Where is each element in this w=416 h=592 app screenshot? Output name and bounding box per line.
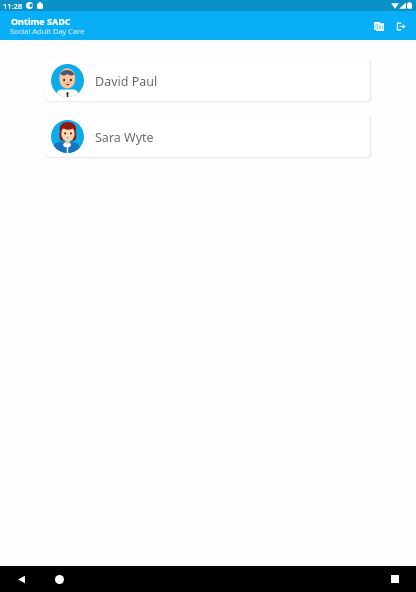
button[interactable]: Logout: [389, 14, 413, 38]
staticText: Ontime SADC: [11, 15, 71, 27]
button[interactable]: Home: [50, 570, 68, 588]
button[interactable]: Sara Wyte: [46, 115, 370, 157]
staticText: Social Adult Day Care: [10, 26, 85, 36]
button[interactable]: Reports: [367, 14, 391, 38]
button[interactable]: Back: [12, 570, 30, 588]
button[interactable]: Recents: [386, 570, 404, 588]
staticText: Sara Wyte: [95, 129, 154, 146]
button[interactable]: David Paul: [46, 59, 370, 101]
staticText: 11:28: [3, 1, 23, 11]
staticText: David Paul: [95, 73, 158, 90]
